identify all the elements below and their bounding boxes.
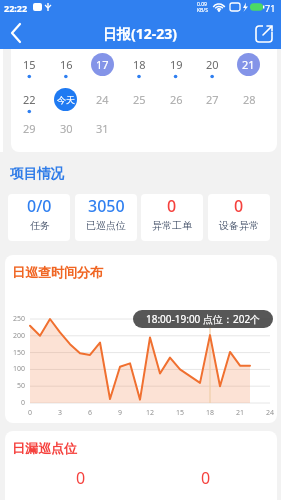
staticText: 0	[28, 408, 33, 418]
staticText: 31	[96, 121, 109, 136]
staticText: 0	[76, 467, 86, 487]
button[interactable]	[2, 18, 34, 48]
button[interactable]: 22	[11, 88, 47, 110]
staticText: 已巡点位	[86, 219, 126, 232]
staticText: 0/0	[27, 195, 52, 217]
button[interactable]: 28	[231, 88, 267, 110]
staticText: 21	[242, 57, 255, 72]
button[interactable]: 29	[11, 117, 47, 139]
button[interactable]: 3050	[75, 194, 137, 241]
staticText: 0	[201, 467, 211, 487]
staticText: 22:22	[4, 2, 28, 14]
staticText: 20	[206, 57, 219, 72]
button[interactable]: 26	[158, 88, 194, 110]
staticText: 日报(12-23)	[103, 24, 178, 43]
staticText: 15	[176, 408, 185, 418]
button[interactable]: 20	[194, 53, 230, 75]
staticText: 71	[265, 2, 276, 14]
staticText: 0	[167, 195, 177, 217]
staticText: 0.09	[197, 1, 207, 8]
staticText: 项目情况	[10, 165, 64, 182]
staticText: 18:00-19:00 点位：202个	[146, 312, 261, 326]
button[interactable]: 30	[48, 117, 84, 139]
staticText: 6	[88, 408, 93, 418]
staticText: 17	[96, 57, 109, 72]
staticText: 18	[206, 408, 215, 418]
staticText: KB/S	[197, 7, 208, 14]
staticText: 任务	[30, 219, 50, 232]
staticText: 24	[96, 92, 109, 107]
staticText: 28	[243, 92, 256, 107]
staticText: 日漏巡点位	[12, 440, 77, 456]
button[interactable]: 19	[158, 53, 194, 75]
staticText: 50	[17, 381, 26, 391]
staticText: 异常工单	[152, 219, 192, 232]
staticText: 0	[21, 398, 26, 408]
staticText: 21	[236, 408, 245, 418]
button[interactable]: 0	[208, 194, 270, 241]
button[interactable]: 24	[84, 88, 120, 110]
staticText: 26	[170, 92, 183, 107]
staticText: 29	[23, 121, 36, 136]
staticText: 150	[13, 348, 26, 358]
staticText: 18	[133, 57, 146, 72]
staticText: 今天	[57, 94, 75, 105]
staticText: 25	[133, 92, 146, 107]
staticText: 9	[118, 408, 123, 418]
staticText: 日巡查时间分布	[12, 264, 103, 280]
staticText: 22	[23, 92, 36, 107]
button[interactable]	[250, 19, 278, 47]
staticText: 15	[23, 57, 36, 72]
staticText: 0	[234, 195, 244, 217]
staticText: 19	[170, 57, 183, 72]
button[interactable]: 18	[121, 53, 157, 75]
staticText: 250	[13, 314, 26, 324]
button[interactable]: 27	[194, 88, 230, 110]
button[interactable]: 15	[11, 53, 47, 75]
staticText: 27	[206, 92, 219, 107]
button[interactable]: 0	[141, 194, 203, 241]
staticText: 200	[13, 331, 26, 341]
staticText: 设备异常	[219, 219, 259, 232]
button[interactable]: 25	[121, 88, 157, 110]
button[interactable]: 今天	[54, 88, 77, 111]
staticText: 3	[58, 408, 63, 418]
button[interactable]: 31	[84, 117, 120, 139]
staticText: 3050	[88, 195, 125, 217]
button[interactable]: 21	[237, 53, 260, 76]
staticText: 100	[13, 364, 26, 374]
staticText: 12	[146, 408, 155, 418]
staticText: 30	[60, 121, 73, 136]
button[interactable]: 0/0	[8, 194, 70, 241]
staticText: 24	[266, 408, 275, 418]
button[interactable]: 16	[48, 53, 84, 75]
button[interactable]: 17	[91, 53, 114, 76]
staticText: 16	[60, 57, 73, 72]
